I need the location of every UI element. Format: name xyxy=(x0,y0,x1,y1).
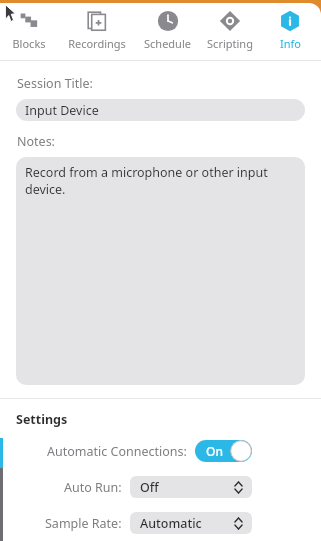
button[interactable]: Info xyxy=(261,3,319,60)
button[interactable]: Schedule xyxy=(136,3,199,60)
button[interactable]: Input Device xyxy=(16,99,305,121)
button[interactable]: Recordings xyxy=(58,3,136,60)
staticText: Sample Rate: xyxy=(45,515,122,532)
staticText: Info xyxy=(280,36,301,51)
staticText: Recordings xyxy=(68,36,126,51)
button[interactable]: Automatic xyxy=(130,512,252,534)
button[interactable]: On xyxy=(195,440,252,462)
other: Schedule xyxy=(157,10,179,32)
staticText: Blocks xyxy=(12,36,46,51)
button[interactable]: Blocks xyxy=(0,3,58,60)
other: Recordings xyxy=(86,10,108,32)
button[interactable]: Off xyxy=(130,476,252,498)
staticText: Record from a microphone or other input … xyxy=(25,164,291,198)
other: Info xyxy=(279,10,301,32)
staticText: Settings xyxy=(16,411,68,428)
staticText: Input Device xyxy=(25,102,99,119)
staticText: Session Title: xyxy=(17,75,93,92)
staticText: Scripting xyxy=(207,36,253,51)
other: Scripting xyxy=(219,10,241,32)
staticText: Automatic xyxy=(140,515,202,532)
staticText: Automatic Connections: xyxy=(47,443,187,460)
staticText: Schedule xyxy=(144,36,191,51)
button[interactable]: Scripting xyxy=(199,3,261,60)
staticText: Auto Run: xyxy=(64,479,122,496)
staticText: Off xyxy=(140,479,159,496)
staticText: Notes: xyxy=(17,133,55,150)
other: Blocks xyxy=(18,10,40,32)
staticText: On xyxy=(206,443,223,459)
button[interactable]: Record from a microphone or other input … xyxy=(16,157,305,385)
